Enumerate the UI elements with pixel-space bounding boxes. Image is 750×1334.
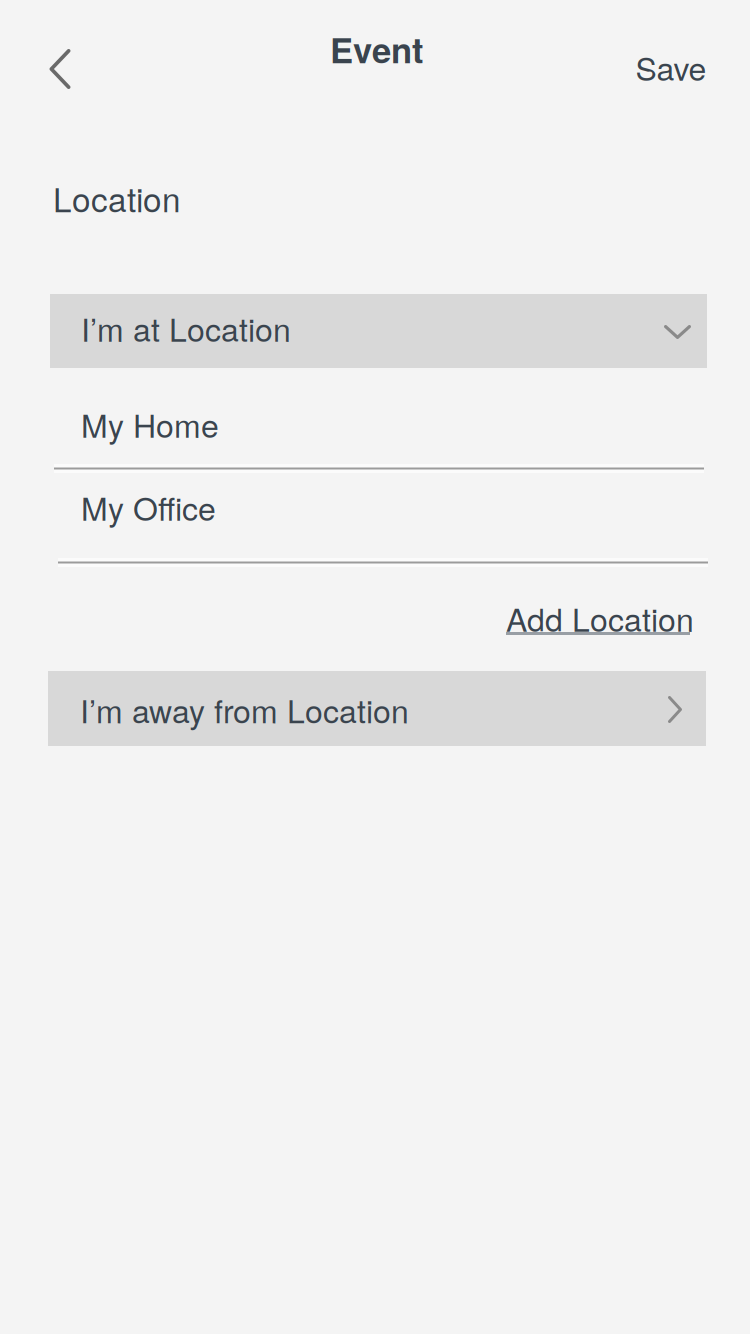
staticText: I’m away from Location — [80, 687, 409, 732]
staticText: Add Location — [506, 595, 694, 641]
staticText: My Office — [81, 484, 216, 530]
button[interactable]: Back — [24, 30, 96, 108]
staticText: My Home — [81, 401, 219, 447]
button[interactable]: Save — [606, 31, 736, 103]
staticText: Location — [53, 174, 181, 222]
button[interactable]: I’m at Location — [50, 294, 707, 368]
staticText: I’m at Location — [81, 305, 291, 351]
button[interactable]: Add Location — [506, 608, 706, 664]
staticText: Event — [330, 24, 424, 74]
button[interactable]: My Home — [81, 385, 731, 463]
button[interactable]: I’m away from Location — [48, 671, 706, 746]
button[interactable]: My Office — [81, 468, 731, 546]
staticText: Save — [635, 44, 706, 90]
